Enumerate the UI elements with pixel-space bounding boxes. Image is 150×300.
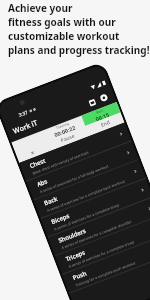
button[interactable]: Pause	[46, 126, 89, 151]
button[interactable]: Push	[62, 234, 150, 293]
button[interactable]: Work iT	[12, 118, 40, 137]
staticText: Abs	[36, 177, 49, 189]
button[interactable]: Shoulders	[48, 197, 150, 255]
staticText: End	[100, 119, 111, 129]
button[interactable]: Notes	[86, 97, 98, 108]
staticText: customizable workout	[8, 29, 120, 43]
button[interactable]: End	[85, 112, 125, 136]
staticText: Achieve your	[8, 1, 73, 15]
staticText: Biceps	[50, 212, 71, 226]
button[interactable]: Close	[15, 141, 50, 163]
button[interactable]: Rest	[81, 102, 121, 126]
staticText: Shoulders	[57, 227, 87, 245]
button[interactable]: Back	[33, 160, 146, 218]
staticText: plans and progress tracking!	[8, 43, 150, 57]
button[interactable]: Biceps	[41, 178, 150, 237]
staticText: Training	[55, 121, 70, 130]
button[interactable]: Triceps	[55, 216, 150, 274]
staticText: A series of exercises for a complete tri…	[68, 239, 135, 269]
staticText: A series of exercises for a complete bac…	[46, 178, 126, 213]
staticText: Pause	[60, 132, 76, 144]
button[interactable]: Abs	[26, 141, 139, 199]
staticText: 3:37	[18, 109, 28, 118]
staticText: Back	[43, 195, 59, 207]
staticText: Blast chest with variety of exercises	[32, 149, 90, 176]
staticText: fitness goals with our	[8, 15, 116, 29]
staticText: ✕	[29, 149, 36, 156]
staticText: A series of exercises for a complete bic…	[53, 202, 120, 232]
button[interactable]: Training	[42, 115, 85, 141]
button[interactable]: Settings	[98, 92, 110, 103]
staticText: Training for a complete push workout	[75, 260, 136, 288]
staticText: Push	[72, 269, 88, 282]
staticText: Triceps	[64, 248, 87, 263]
staticText: Rest	[95, 107, 105, 115]
staticText: Chest	[29, 156, 47, 170]
staticText: 00:15	[94, 110, 110, 121]
button[interactable]: Chest	[19, 122, 131, 181]
staticText: A series of exercises for a full body wo…	[39, 163, 110, 194]
staticText: A series of exercises for a complete sho…	[60, 218, 133, 250]
staticText: 00:00:22	[53, 124, 76, 137]
